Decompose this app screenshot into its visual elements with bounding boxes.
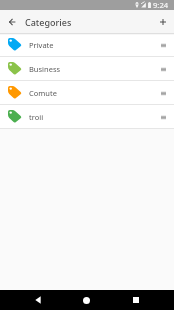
button[interactable]: Recents [111,290,160,310]
button[interactable]: Private [0,33,174,57]
button[interactable]: troii [0,105,174,129]
staticText: Private [29,40,54,50]
other: Reorder [158,64,168,74]
other: Reorder [158,40,168,50]
button[interactable]: Add category [151,10,174,33]
button[interactable]: Home [62,290,111,310]
staticText: 9:24 [153,0,169,10]
other: Reorder [158,112,168,122]
button[interactable]: Business [0,57,174,81]
button[interactable]: Back [0,10,23,33]
staticText: Comute [29,88,57,98]
button[interactable]: Comute [0,81,174,105]
other: Reorder [158,88,168,98]
button[interactable]: Back [14,290,62,310]
staticText: Business [29,64,61,74]
staticText: Categories [25,16,72,28]
staticText: troii [29,112,44,122]
